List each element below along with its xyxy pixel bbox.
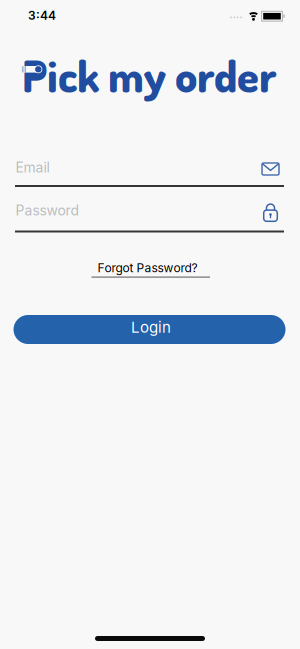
staticText: Forgot Password? <box>97 261 197 275</box>
staticText: Password <box>15 202 78 219</box>
staticText: Pick my order <box>22 47 276 103</box>
staticText: Email <box>15 159 49 176</box>
button[interactable]: Login <box>13 315 285 344</box>
staticText: Login <box>131 318 171 336</box>
button[interactable]: Password <box>0 186 300 242</box>
staticText: 3:44 <box>28 8 56 23</box>
button[interactable]: Email <box>0 141 300 197</box>
button[interactable]: Forgot Password? <box>82 254 218 284</box>
